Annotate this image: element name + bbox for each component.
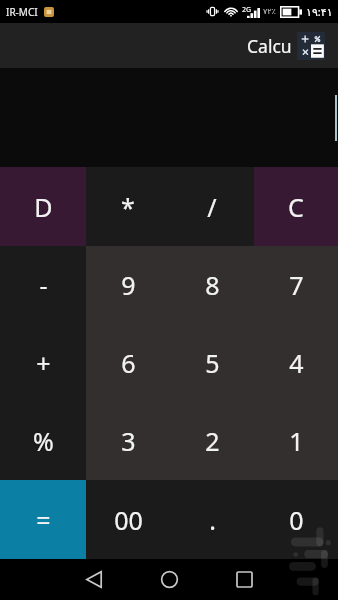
button[interactable]: 9 bbox=[86, 246, 170, 324]
button[interactable]: Back bbox=[72, 559, 116, 600]
button[interactable]: 0 bbox=[254, 480, 338, 559]
staticText: % bbox=[33, 424, 54, 458]
staticText: * bbox=[121, 190, 135, 224]
staticText: / bbox=[207, 190, 217, 224]
staticText: 7 bbox=[289, 268, 304, 302]
staticText: 5 bbox=[205, 346, 220, 380]
button[interactable]: 5 bbox=[170, 324, 254, 402]
staticText: 9 bbox=[121, 268, 136, 302]
staticText: D bbox=[34, 190, 53, 224]
button[interactable]: C bbox=[254, 167, 338, 246]
button[interactable]: 6 bbox=[86, 324, 170, 402]
button[interactable]: 00 bbox=[86, 480, 170, 559]
button[interactable]: Calculator bbox=[297, 32, 325, 60]
staticText: ۷۲٪ bbox=[263, 7, 276, 16]
button[interactable]: + bbox=[0, 324, 86, 402]
button[interactable]: = bbox=[0, 480, 86, 559]
staticText: 3 bbox=[121, 424, 136, 458]
staticText: 2 bbox=[205, 424, 220, 458]
button[interactable]: 1 bbox=[254, 402, 338, 480]
staticText: IR-MCI bbox=[6, 5, 38, 19]
button[interactable]: / bbox=[170, 167, 254, 246]
staticText: 00 bbox=[114, 503, 143, 537]
staticText: ۱۹:۴۱ bbox=[306, 4, 333, 19]
staticText: C bbox=[288, 190, 304, 224]
staticText: . bbox=[209, 503, 216, 537]
button[interactable]: * bbox=[86, 167, 170, 246]
button[interactable]: % bbox=[0, 402, 86, 480]
staticText: 1 bbox=[289, 424, 304, 458]
button[interactable]: 3 bbox=[86, 402, 170, 480]
staticText: 6 bbox=[121, 346, 136, 380]
staticText: 4 bbox=[289, 346, 304, 380]
staticText: + bbox=[36, 346, 51, 380]
button[interactable]: 7 bbox=[254, 246, 338, 324]
staticText: 8 bbox=[205, 268, 220, 302]
button[interactable]: . bbox=[170, 480, 254, 559]
button[interactable]: Recents bbox=[222, 559, 266, 600]
button[interactable]: Home bbox=[147, 559, 191, 600]
staticText: 2G bbox=[242, 5, 252, 15]
button[interactable]: D bbox=[0, 167, 86, 246]
button[interactable]: 2 bbox=[170, 402, 254, 480]
button[interactable]: - bbox=[0, 246, 86, 324]
button[interactable]: 8 bbox=[170, 246, 254, 324]
staticText: - bbox=[39, 268, 48, 302]
staticText: 0 bbox=[289, 503, 304, 537]
staticText: Calcu bbox=[247, 34, 292, 58]
button[interactable]: 4 bbox=[254, 324, 338, 402]
staticText: = bbox=[36, 503, 51, 537]
